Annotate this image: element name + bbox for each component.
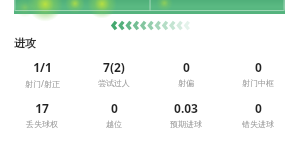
staticText: 0 — [255, 100, 262, 116]
button[interactable]: 0 — [222, 100, 294, 129]
staticText: 射门/射正 — [25, 78, 60, 89]
staticText: 0 — [183, 59, 190, 75]
staticText: 预期进球 — [170, 119, 202, 129]
button[interactable]: 0 — [78, 100, 150, 129]
button[interactable]: 1/1 — [6, 59, 78, 89]
staticText: 进攻 — [14, 36, 36, 50]
staticText: 越位 — [106, 119, 122, 129]
staticText: 0 — [111, 100, 118, 116]
button[interactable]: 0 — [150, 59, 222, 88]
staticText: 17 — [35, 100, 49, 116]
staticText: 1/1 — [33, 59, 52, 75]
staticText: 0.03 — [174, 100, 198, 116]
staticText: 7(2) — [103, 59, 125, 75]
staticText: 尝试过人 — [98, 78, 130, 88]
button[interactable]: 7(2) — [78, 59, 150, 88]
button[interactable]: 0.03 — [150, 100, 222, 129]
staticText: 丢失球权 — [26, 119, 58, 129]
button[interactable]: 0 — [222, 59, 294, 88]
button[interactable]: 17 — [6, 100, 78, 129]
staticText: 射偏 — [178, 78, 194, 88]
staticText: 0 — [255, 59, 262, 75]
staticText: 错失进球 — [242, 119, 274, 129]
button[interactable]: Heat map — [14, 0, 285, 14]
staticText: 射门中框 — [242, 78, 274, 88]
